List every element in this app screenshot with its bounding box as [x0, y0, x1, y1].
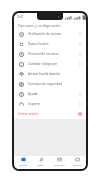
staticText: Soporte	[28, 102, 78, 106]
button[interactable]: Activar huella dactilar	[14, 69, 86, 79]
button[interactable]: Consejos de seguridad	[14, 79, 86, 89]
staticText: 9:41	[17, 15, 24, 19]
staticText: Consejos de seguridad	[28, 82, 78, 86]
button[interactable]: Verificación de cuenta	[14, 29, 86, 39]
staticText: Datos fiscales	[28, 42, 78, 46]
staticText: Activar huella dactilar	[28, 72, 78, 76]
staticText: Cambiar código pin	[28, 62, 78, 66]
staticText: Ayuda	[28, 92, 78, 96]
button[interactable]: Cambiar código pin	[14, 59, 86, 69]
staticText: Verificación de cuenta	[28, 32, 78, 36]
staticText: Cartera	[73, 163, 82, 166]
staticText: Mover	[37, 163, 45, 166]
button[interactable]: Transferir	[50, 156, 68, 167]
button[interactable]: Ayuda	[14, 89, 86, 99]
button[interactable]: Soporte	[14, 99, 86, 109]
button[interactable]: Historial de sesiones	[14, 49, 86, 59]
staticText: Opciones y configuración	[18, 23, 61, 28]
staticText: Cuenta	[19, 163, 28, 166]
button[interactable]: Mover	[32, 156, 50, 167]
button[interactable]: Datos fiscales	[14, 39, 86, 49]
staticText: Transferir	[54, 163, 65, 166]
staticText: Historial de sesiones	[28, 52, 78, 56]
button[interactable]: Cartera	[68, 156, 86, 167]
button[interactable]: Cerrar sesión	[14, 109, 86, 119]
staticText: Cerrar sesión	[18, 112, 38, 116]
button[interactable]: Cuenta	[14, 156, 32, 167]
